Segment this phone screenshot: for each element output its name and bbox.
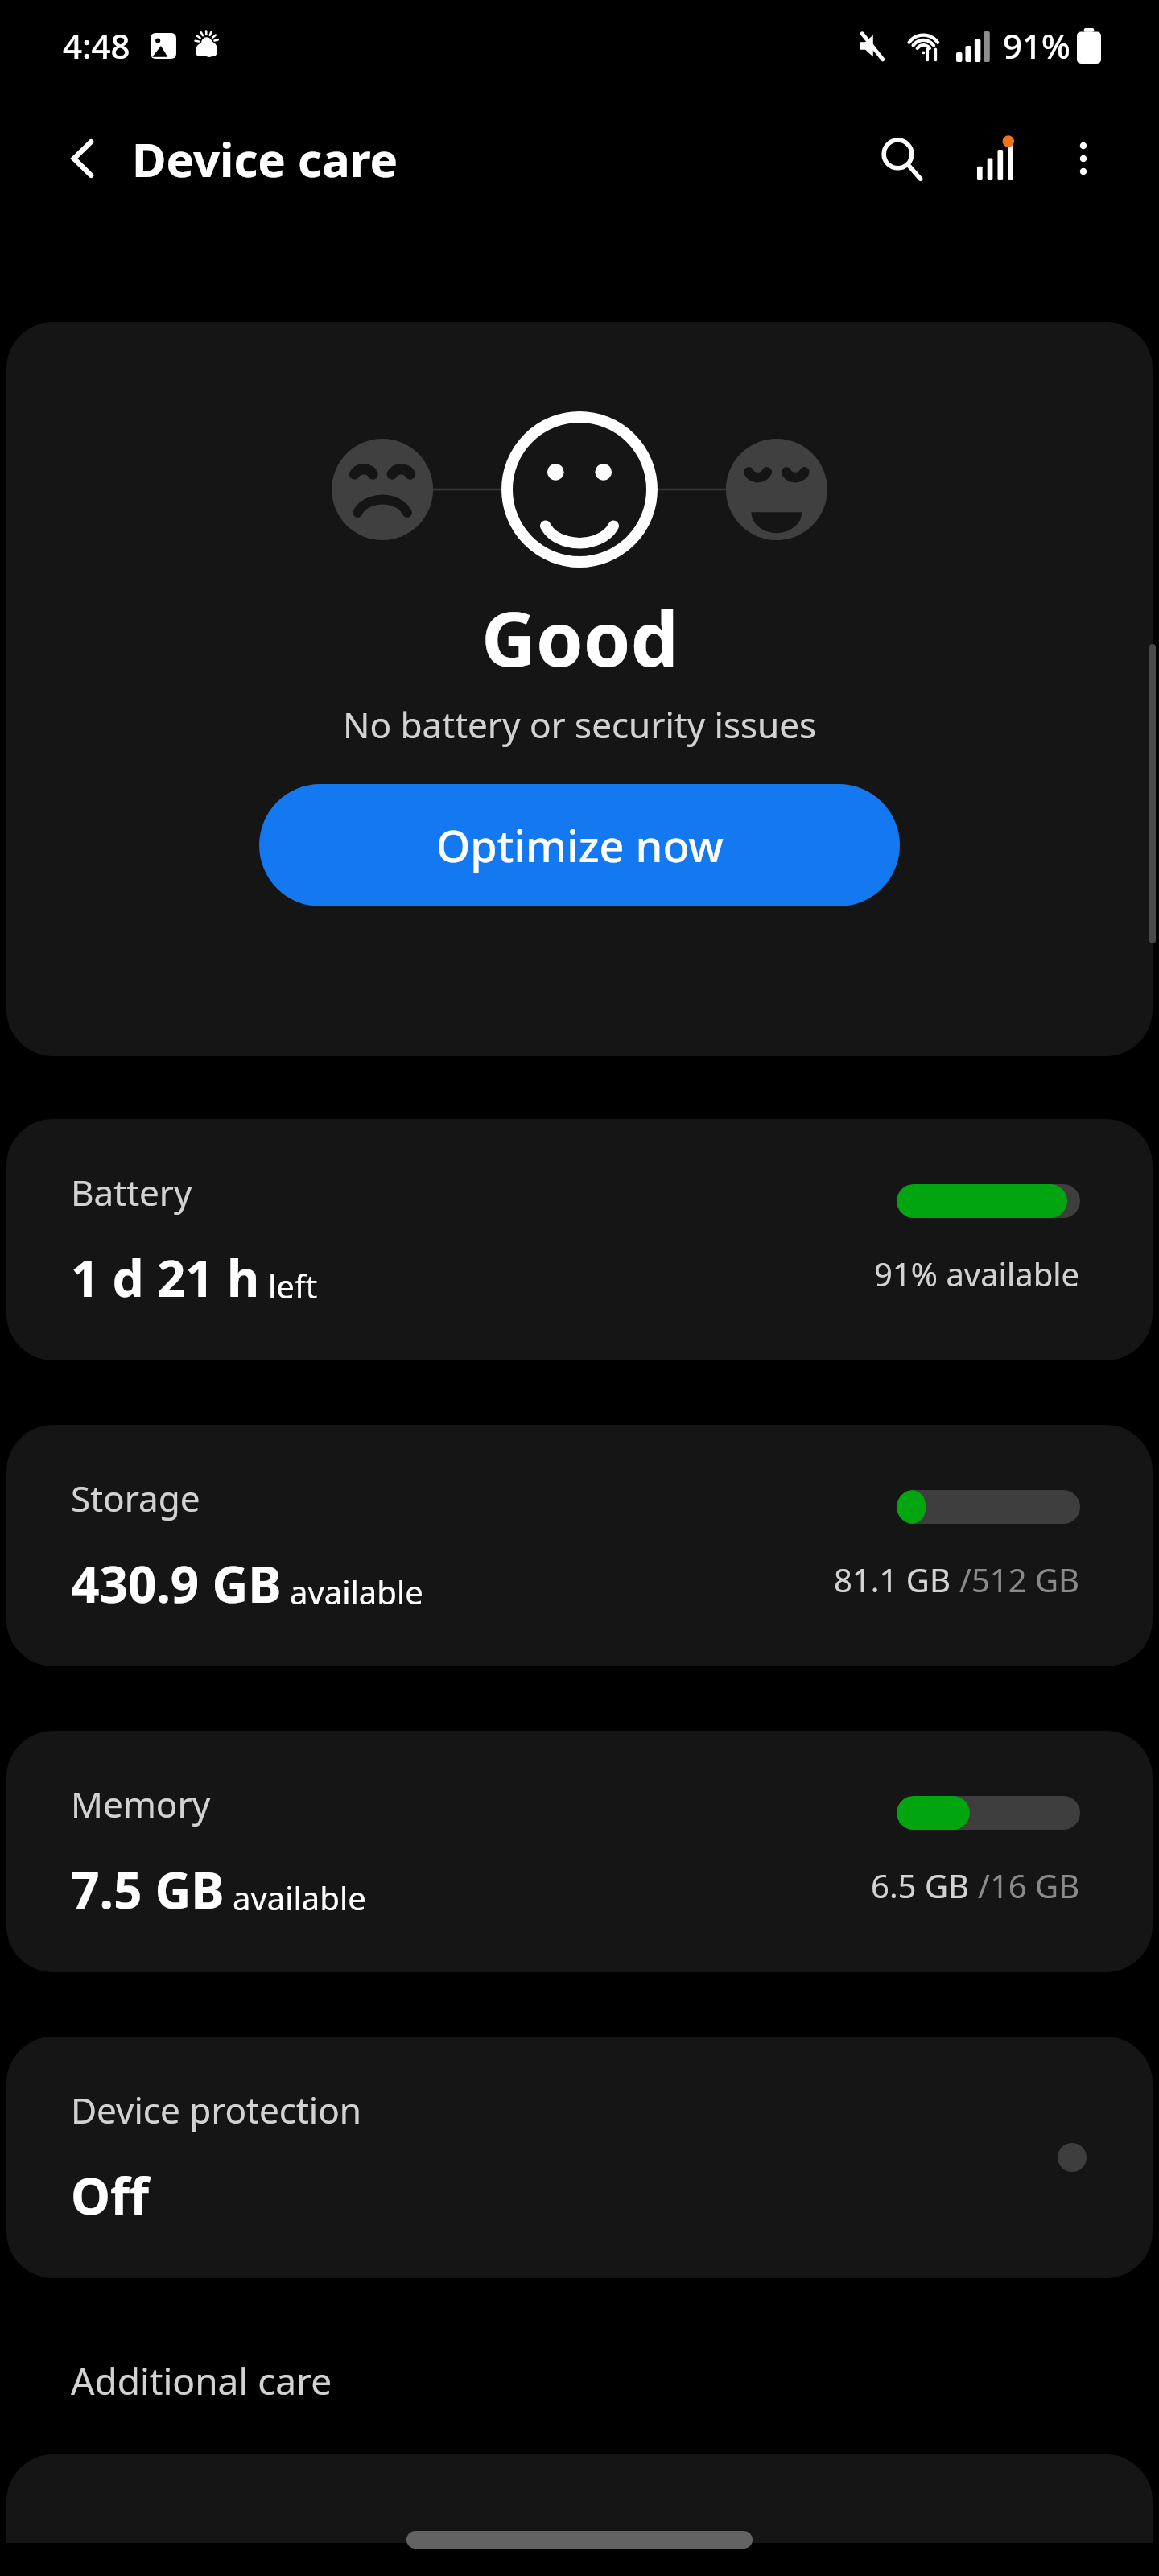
button[interactable]: Storage bbox=[6, 1425, 1153, 1666]
staticText: 91% bbox=[1003, 23, 1070, 68]
staticText: Device care bbox=[132, 127, 398, 191]
staticText: Optimize now bbox=[436, 815, 724, 875]
button[interactable]: Optimize now bbox=[259, 784, 900, 906]
staticText: Good bbox=[481, 586, 678, 689]
button[interactable] bbox=[6, 2454, 1153, 2543]
staticText: Off bbox=[71, 2161, 149, 2229]
button[interactable]: Diagnostics bbox=[956, 120, 1033, 197]
staticText: left bbox=[268, 1264, 318, 1307]
staticText: 91% available bbox=[874, 1252, 1080, 1295]
button[interactable]: Memory bbox=[6, 1731, 1153, 1972]
staticText: 7.5 GB bbox=[71, 1856, 225, 1923]
staticText: /16 GB bbox=[978, 1864, 1080, 1907]
staticText: 430.9 GB bbox=[71, 1550, 282, 1617]
staticText: Storage bbox=[71, 1474, 200, 1522]
button[interactable]: More options bbox=[1045, 120, 1122, 197]
staticText: No battery or security issues bbox=[343, 700, 817, 749]
staticText: /512 GB bbox=[959, 1558, 1080, 1601]
staticText: 6.5 GB bbox=[871, 1864, 978, 1907]
staticText: Device protection bbox=[71, 2086, 361, 2134]
staticText: 4:48 bbox=[63, 23, 130, 68]
staticText: available bbox=[290, 1570, 423, 1613]
button[interactable]: Search bbox=[863, 120, 940, 197]
staticText: Additional care bbox=[71, 2355, 332, 2406]
staticText: Memory bbox=[71, 1780, 211, 1828]
staticText: available bbox=[233, 1876, 366, 1919]
button[interactable]: Device protection bbox=[6, 2037, 1153, 2278]
staticText: 1 d 21 h bbox=[71, 1244, 260, 1311]
button[interactable]: Back bbox=[48, 124, 118, 193]
button[interactable]: Battery bbox=[6, 1119, 1153, 1360]
staticText: Battery bbox=[71, 1168, 192, 1216]
staticText: 81.1 GB bbox=[834, 1558, 959, 1601]
